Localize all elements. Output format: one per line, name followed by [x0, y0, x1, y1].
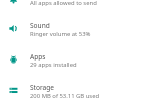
staticText: Sound: [30, 21, 50, 30]
button[interactable]: Sound: [0, 13, 158, 44]
staticText: 200 MB of 53.11 GB used: [30, 92, 100, 100]
staticText: 29 apps installed: [30, 61, 77, 69]
staticText: Apps: [30, 52, 46, 61]
other: Storage: [9, 86, 18, 95]
other: Notifications: [9, 0, 18, 4]
button[interactable]: Notifications: [0, 0, 158, 13]
button[interactable]: Storage: [0, 75, 158, 106]
staticText: Ringer volume at 53%: [30, 30, 91, 38]
other: Apps: [9, 55, 18, 64]
staticText: All apps allowed to send: [30, 0, 97, 7]
button[interactable]: Apps: [0, 44, 158, 75]
other: Sound: [9, 24, 18, 33]
staticText: Storage: [30, 83, 55, 92]
